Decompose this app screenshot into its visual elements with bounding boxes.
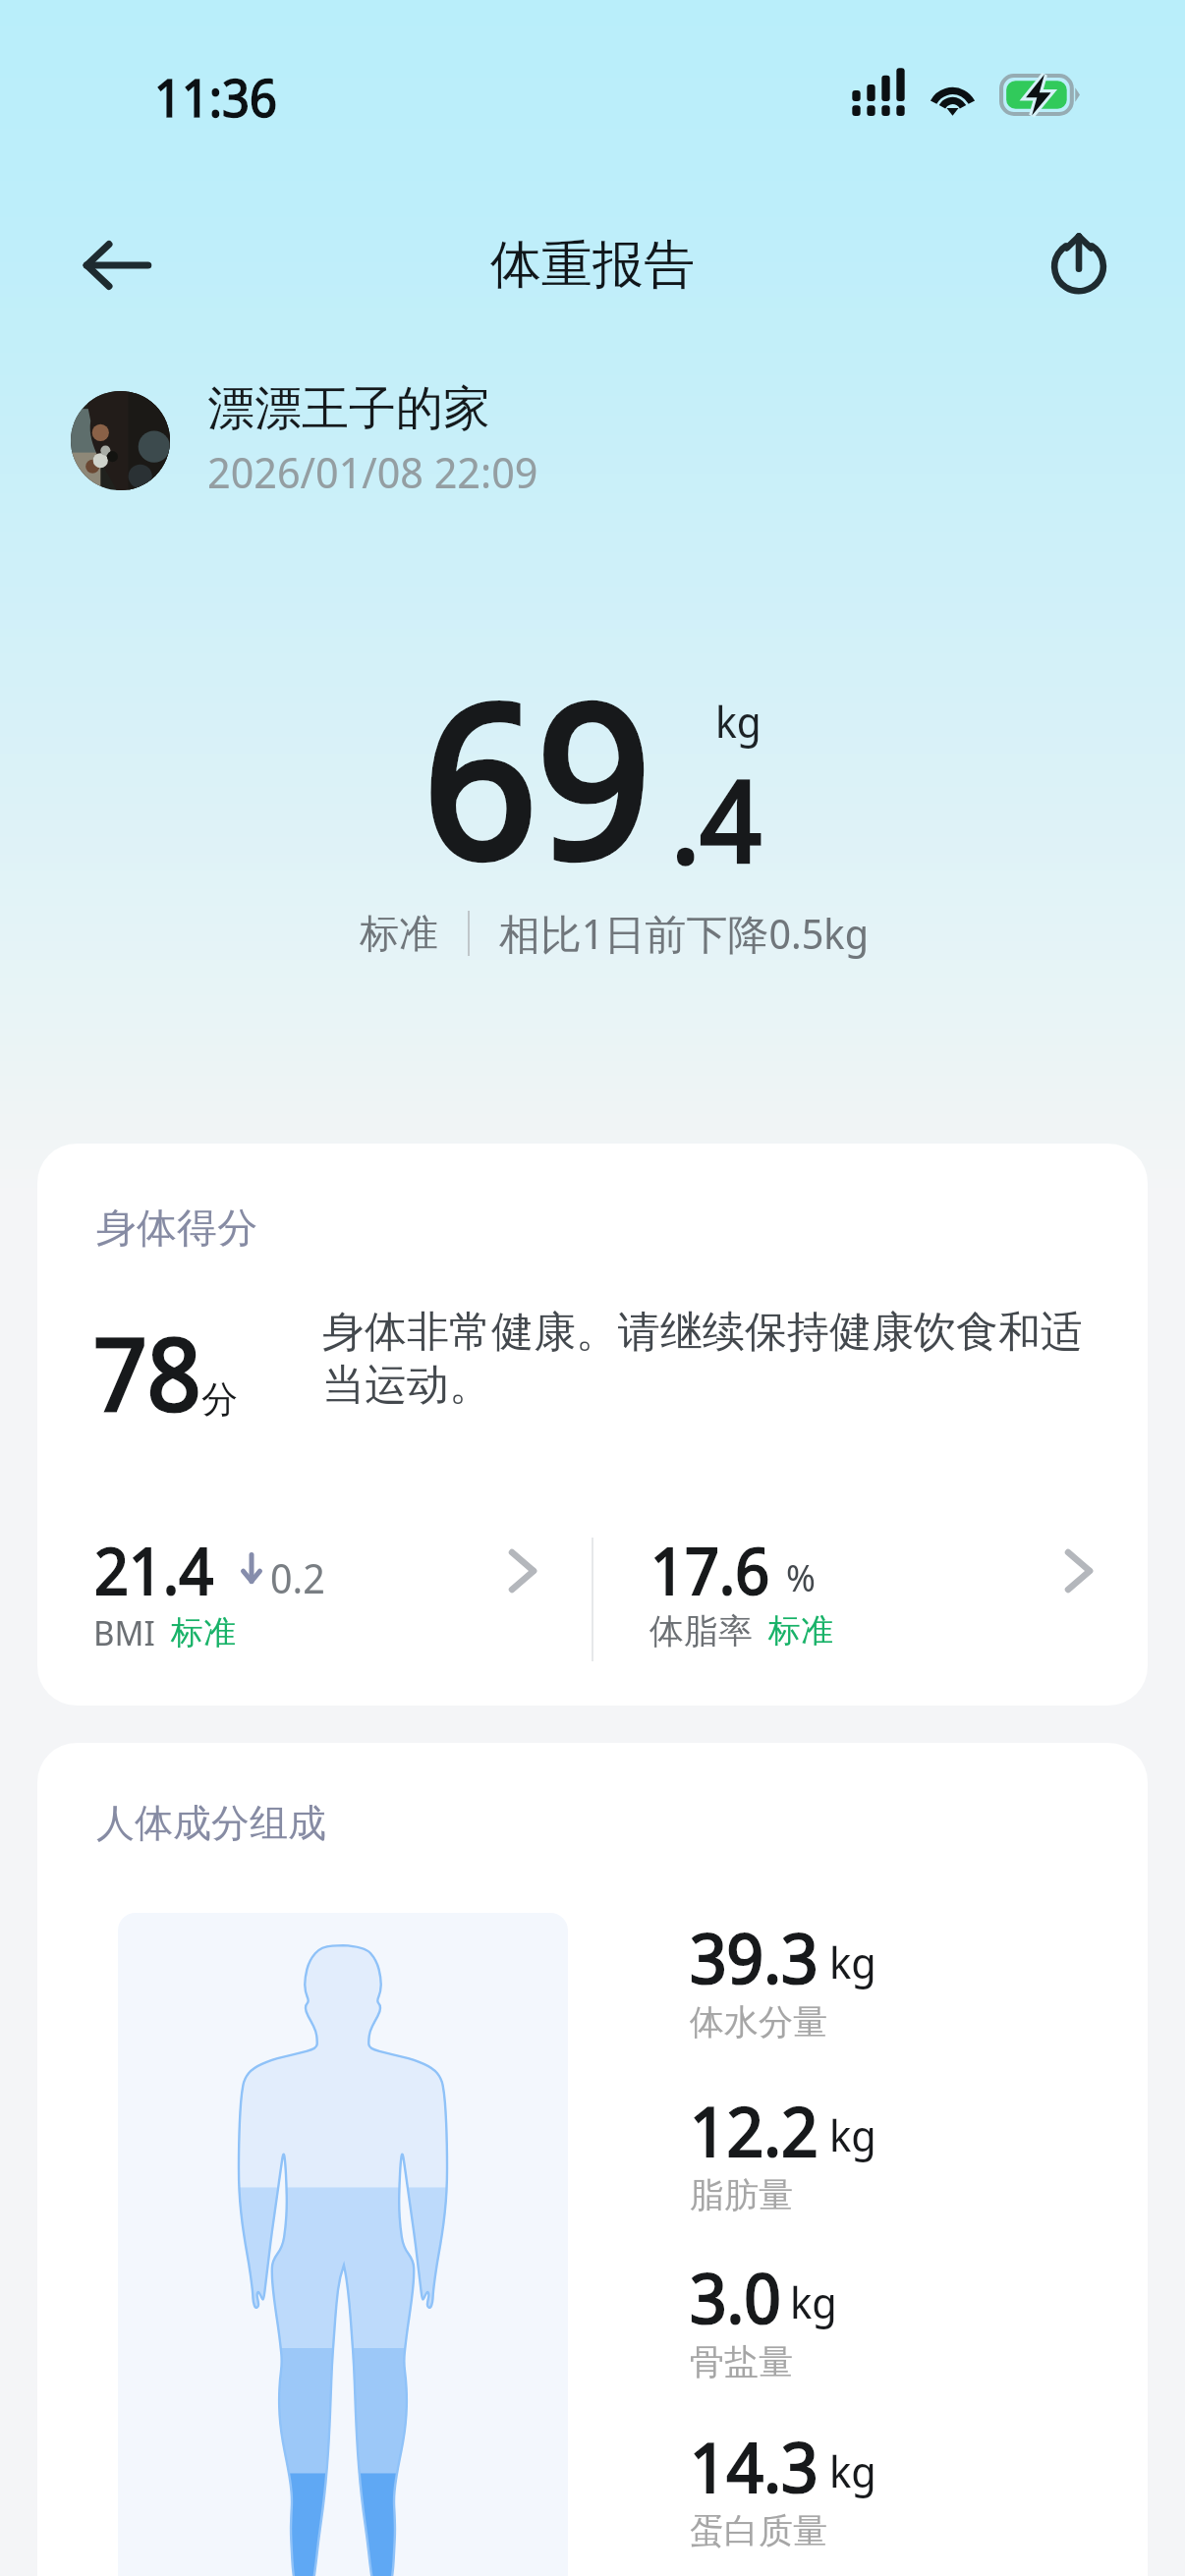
staticText: kg xyxy=(829,1932,876,1991)
staticText: 标准 xyxy=(768,1610,833,1652)
staticText: 标准 xyxy=(360,909,438,958)
staticText: .4 xyxy=(671,741,762,896)
staticText: 11:36 xyxy=(154,62,277,132)
button[interactable]: 漂漂王子的家 xyxy=(71,379,538,501)
staticText: 脂肪量 xyxy=(690,2173,793,2216)
staticText: 骨盐量 xyxy=(690,2340,793,2383)
staticText: 漂漂王子的家 xyxy=(207,379,490,438)
button[interactable]: Share xyxy=(1045,228,1112,295)
button[interactable]: 17.6 xyxy=(593,1517,1148,1664)
staticText: 体脂率 xyxy=(649,1609,753,1652)
staticText: kg xyxy=(715,693,762,751)
staticText: 17.6 xyxy=(650,1527,770,1614)
staticText: 标准 xyxy=(171,1612,236,1653)
staticText: 分 xyxy=(201,1376,238,1423)
staticText: 78 xyxy=(93,1304,201,1440)
button[interactable]: Back xyxy=(83,225,159,306)
staticText: 21.4 xyxy=(94,1527,214,1614)
staticText: % xyxy=(786,1551,816,1602)
staticText: 0.2 xyxy=(270,1549,325,1605)
staticText: 体重报告 xyxy=(490,233,695,298)
staticText: 人体成分组成 xyxy=(96,1799,326,1847)
staticText: 69 xyxy=(423,632,650,920)
staticText: 3.0 xyxy=(690,2250,781,2343)
staticText: 相比1日前下降0.5kg xyxy=(499,905,869,961)
staticText: kg xyxy=(829,2441,876,2500)
button[interactable]: 21.4 xyxy=(37,1517,592,1664)
staticText: kg xyxy=(829,2105,876,2164)
staticText: 12.2 xyxy=(690,2083,818,2176)
staticText: 14.3 xyxy=(690,2419,818,2512)
staticText: 身体得分 xyxy=(96,1204,257,1255)
staticText: kg xyxy=(790,2272,837,2331)
staticText: 蛋白质量 xyxy=(690,2509,827,2552)
staticText: BMI xyxy=(93,1609,155,1656)
staticText: 2026/01/08 22:09 xyxy=(207,442,538,501)
staticText: 体水分量 xyxy=(690,2000,827,2044)
staticText: 39.3 xyxy=(690,1910,818,2003)
staticText: 身体非常健康。请继续保持健康饮食和适当运动。 xyxy=(322,1306,1099,1412)
